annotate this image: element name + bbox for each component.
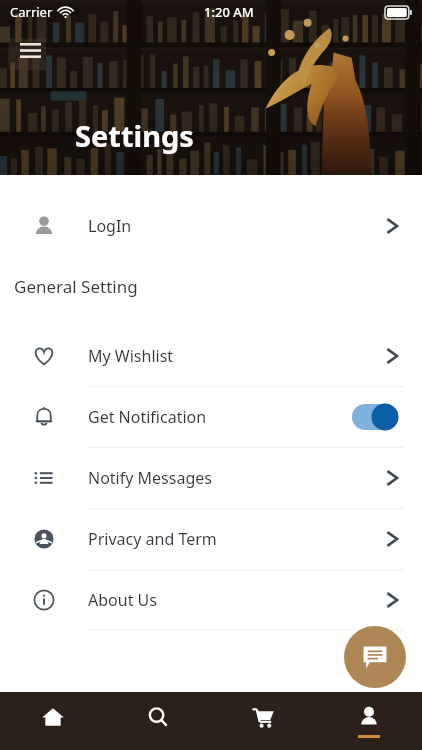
button[interactable]: About Us (0, 570, 422, 630)
staticText: About Us (88, 589, 157, 611)
staticText: My Wishlist (88, 345, 174, 367)
button[interactable]: Notify Messages (0, 448, 422, 508)
staticText: 1:20 AM (204, 3, 254, 21)
button[interactable]: LogIn (0, 197, 422, 255)
staticText: General Setting (14, 275, 138, 298)
button[interactable]: Privacy and Term (0, 509, 422, 569)
button[interactable]: Home (0, 692, 105, 750)
button[interactable]: Profile (316, 692, 422, 750)
button[interactable]: Chat (344, 626, 406, 688)
button[interactable]: Get Notification (0, 387, 422, 447)
button[interactable]: Menu (12, 32, 48, 68)
staticText: Privacy and Term (88, 528, 217, 550)
staticText: Carrier (10, 3, 53, 21)
staticText: Settings (75, 116, 194, 155)
staticText: Notify Messages (88, 467, 212, 489)
button[interactable]: Cart (210, 692, 316, 750)
button[interactable]: My Wishlist (0, 326, 422, 386)
button[interactable]: Search (105, 692, 210, 750)
staticText: LogIn (88, 215, 132, 237)
staticText: Get Notification (88, 406, 207, 428)
